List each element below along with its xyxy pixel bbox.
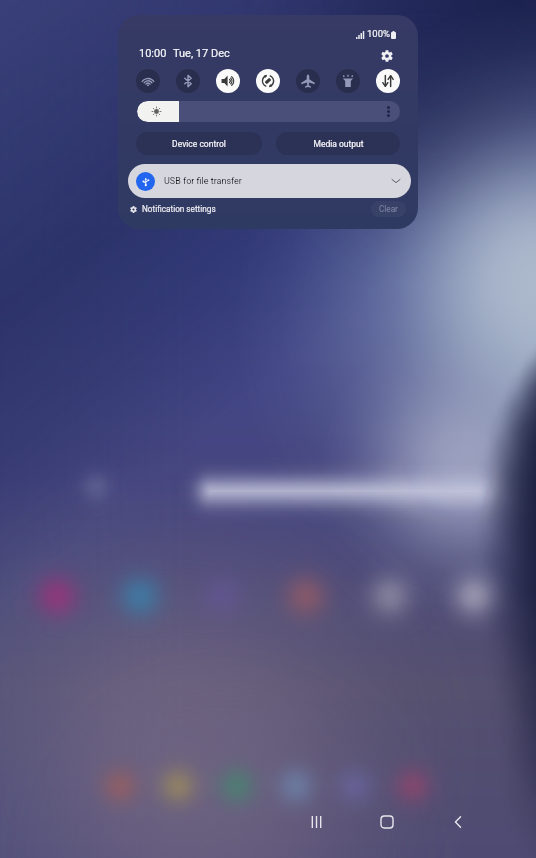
button[interactable]: Back	[436, 800, 480, 844]
button[interactable]: Notification settings	[127, 201, 219, 217]
button[interactable]: Flashlight	[328, 65, 368, 97]
button[interactable]: Mobile data	[368, 65, 408, 97]
staticText: Media output	[313, 139, 364, 149]
button[interactable]: Wi-Fi	[128, 65, 168, 97]
button[interactable]: Brightness	[137, 101, 400, 122]
button[interactable]: Quick settings	[374, 43, 400, 69]
button[interactable]: Recents	[294, 800, 338, 844]
staticText: 10:00	[139, 47, 167, 60]
staticText: 100%	[367, 28, 390, 39]
button[interactable]: USB for file transfer	[128, 164, 411, 198]
button[interactable]: Device control	[136, 132, 262, 155]
button[interactable]: Clear	[371, 201, 406, 217]
button[interactable]: Home	[365, 800, 409, 844]
button[interactable]: Sound	[208, 65, 248, 97]
staticText: Clear	[379, 204, 398, 214]
staticText: Notification settings	[142, 204, 216, 214]
staticText: USB for file transfer	[164, 176, 242, 187]
staticText: Tue, 17 Dec	[173, 47, 230, 60]
button[interactable]: Airplane mode	[288, 65, 328, 97]
staticText: Device control	[172, 139, 226, 149]
button[interactable]: Auto rotate	[248, 65, 288, 97]
button[interactable]: Media output	[276, 132, 400, 155]
button[interactable]: Bluetooth	[168, 65, 208, 97]
